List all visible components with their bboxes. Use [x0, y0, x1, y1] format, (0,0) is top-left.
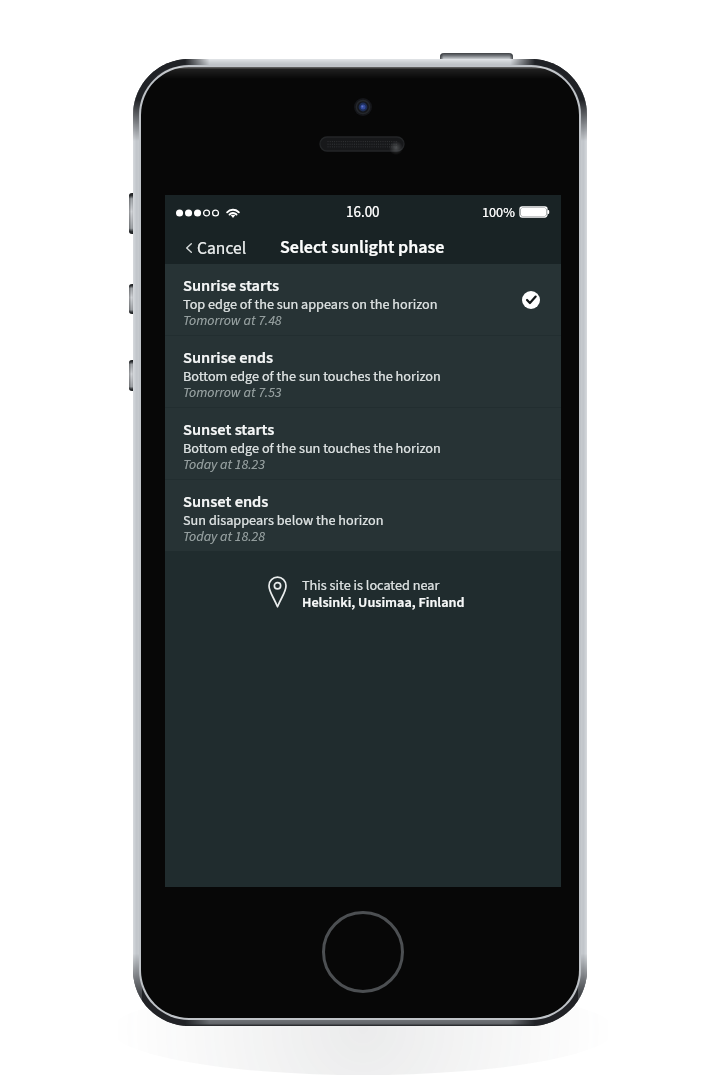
staticText: Today at 18.23 — [183, 455, 265, 475]
staticText: Helsinki, Uusimaa, Finland — [302, 592, 465, 612]
button[interactable]: Sunset starts — [165, 408, 561, 479]
staticText: Bottom edge of the sun touches the horiz… — [183, 366, 441, 386]
staticText: Sunset starts — [183, 418, 275, 441]
button[interactable]: Cancel — [165, 231, 261, 264]
staticText: Select sunlight phase — [280, 235, 445, 261]
staticText: Sunrise ends — [183, 346, 274, 369]
staticText: Bottom edge of the sun touches the horiz… — [183, 438, 441, 458]
staticText: This site is located near — [302, 575, 440, 595]
staticText: Tomorrow at 7.53 — [183, 383, 282, 403]
staticText: 100% — [482, 202, 515, 222]
staticText: Top edge of the sun appears on the horiz… — [183, 294, 438, 314]
staticText: Cancel — [197, 236, 247, 259]
staticText: Sun disappears below the horizon — [183, 510, 384, 530]
button[interactable]: Sunset ends — [165, 480, 561, 551]
staticText: Sunset ends — [183, 490, 269, 513]
button[interactable]: Sunrise ends — [165, 336, 561, 407]
other: Selected — [522, 291, 540, 309]
staticText: 16.00 — [346, 202, 380, 223]
staticText: Tomorrow at 7.48 — [183, 311, 282, 331]
button[interactable]: Sunrise starts — [165, 264, 561, 335]
staticText: Today at 18.28 — [183, 527, 265, 547]
staticText: Sunrise starts — [183, 274, 279, 297]
